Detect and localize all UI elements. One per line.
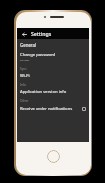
button[interactable]: Change password bbox=[20, 52, 86, 63]
staticText: Settings bbox=[31, 30, 52, 37]
staticText: Change password bbox=[20, 52, 56, 58]
staticText: Application version info bbox=[20, 89, 67, 95]
button[interactable]: Receive order notifications bbox=[20, 105, 86, 112]
staticText: Sync bbox=[20, 67, 27, 71]
staticText: General bbox=[20, 42, 37, 48]
button[interactable]: Home bbox=[47, 150, 60, 163]
button[interactable]: Wi-Fi bbox=[20, 73, 86, 79]
staticText: Wi-Fi bbox=[20, 73, 30, 79]
staticText: Info bbox=[20, 83, 26, 87]
staticText: Receive order notifications bbox=[20, 106, 73, 112]
staticText: •••••••• bbox=[20, 59, 30, 63]
staticText: Other bbox=[20, 99, 29, 103]
button[interactable]: Application version info bbox=[20, 89, 86, 95]
button[interactable]: Back bbox=[20, 30, 28, 38]
